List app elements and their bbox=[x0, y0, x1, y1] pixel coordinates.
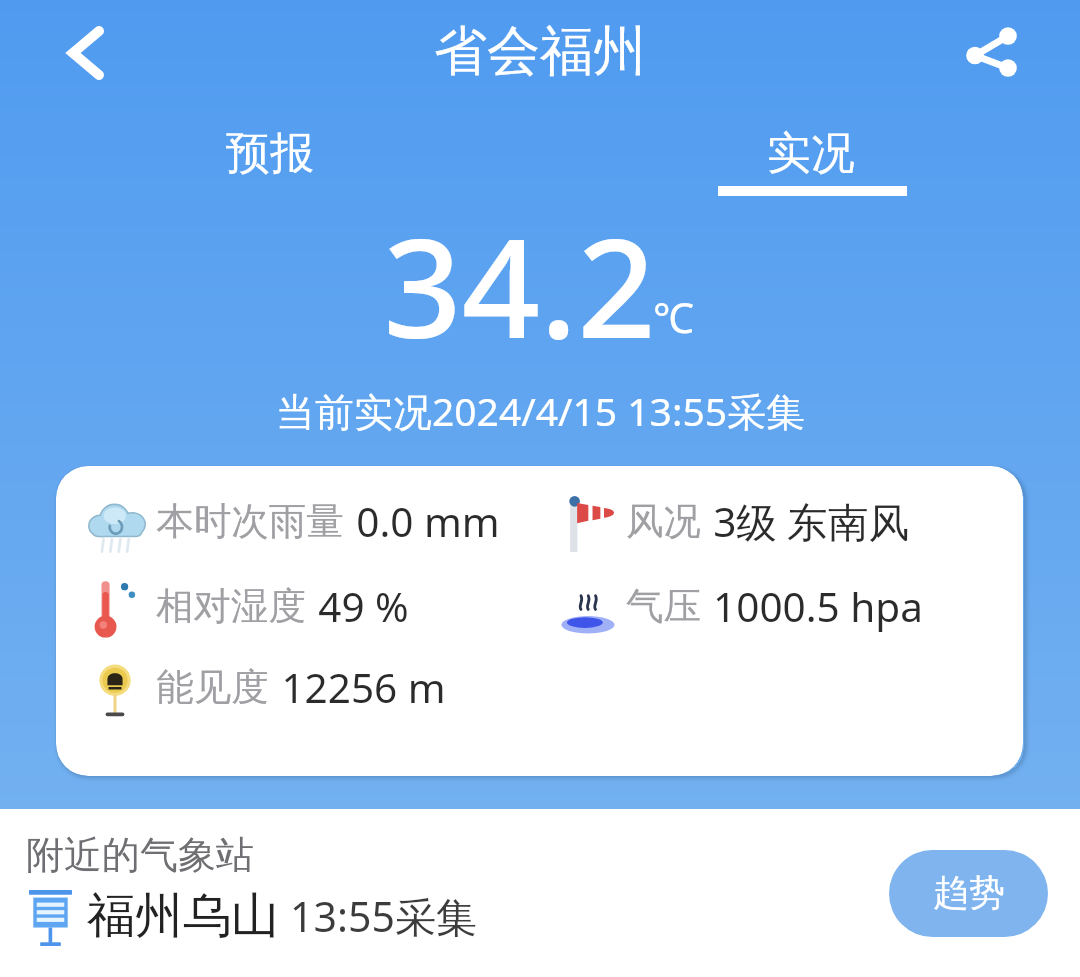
button[interactable]: 预报 bbox=[0, 105, 540, 201]
staticText: 1000.5 hpa bbox=[713, 579, 923, 634]
staticText: 实况 bbox=[767, 126, 855, 181]
staticText: 能见度 bbox=[156, 664, 269, 711]
staticText: 0.0 mm bbox=[356, 494, 500, 549]
button[interactable]: Share bbox=[946, 8, 1036, 98]
button[interactable]: Back bbox=[41, 8, 131, 98]
staticText: 预报 bbox=[226, 126, 314, 181]
staticText: 49 % bbox=[318, 579, 409, 634]
staticText: 34.2 bbox=[383, 192, 656, 379]
button[interactable]: 趋势 bbox=[889, 850, 1048, 937]
staticText: 本时次雨量 bbox=[156, 498, 344, 545]
staticText: 附近的气象站 bbox=[26, 831, 254, 879]
staticText: 当前实况2024/4/15 13:55采集 bbox=[276, 384, 805, 437]
staticText: ℃ bbox=[653, 289, 694, 345]
staticText: 3级 东南风 bbox=[713, 494, 909, 549]
button[interactable]: 实况 bbox=[540, 105, 1080, 201]
staticText: 省会福州 bbox=[434, 18, 646, 85]
staticText: 趋势 bbox=[933, 870, 1005, 915]
staticText: 12256 m bbox=[281, 660, 446, 715]
staticText: 风况 bbox=[626, 498, 701, 545]
staticText: 13:55采集 bbox=[290, 888, 477, 944]
staticText: 相对湿度 bbox=[156, 583, 306, 630]
staticText: 气压 bbox=[626, 583, 701, 630]
staticText: 福州乌山 bbox=[87, 886, 279, 946]
button[interactable]: 福州乌山 bbox=[26, 889, 477, 949]
